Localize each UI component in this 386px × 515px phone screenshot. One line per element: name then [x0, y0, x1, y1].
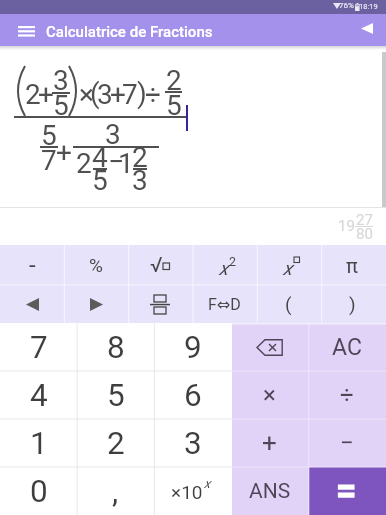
staticText: 7 — [122, 78, 138, 111]
staticText: x — [204, 476, 211, 491]
staticText: 18:19 — [359, 2, 378, 11]
staticText: 27 — [356, 211, 373, 229]
staticText: × — [263, 381, 276, 409]
button[interactable]: x — [256, 245, 320, 285]
button[interactable]: ANS — [231, 467, 308, 515]
staticText: 4 — [30, 377, 48, 414]
staticText: ) — [137, 77, 147, 110]
staticText: 5 — [53, 89, 69, 122]
button[interactable]: × — [231, 371, 308, 419]
staticText: + — [110, 78, 126, 111]
staticText: 76% — [339, 1, 354, 10]
staticText: √ — [150, 253, 163, 278]
button[interactable]: 8 — [77, 323, 154, 371]
button[interactable]: ( — [256, 285, 320, 323]
button[interactable]: F⇔D — [192, 285, 256, 323]
staticText: ( — [90, 77, 100, 110]
staticText: F⇔D — [208, 295, 241, 314]
staticText: − — [108, 145, 125, 178]
staticText: 2 — [76, 147, 92, 180]
button[interactable] — [350, 15, 384, 41]
button[interactable]: 5 — [77, 371, 154, 419]
button[interactable]: π — [320, 245, 384, 285]
staticText: 5 — [41, 119, 57, 152]
staticText: ( — [285, 293, 292, 315]
staticText: − — [340, 429, 354, 457]
button[interactable]: 1 — [0, 419, 77, 467]
staticText: 2 — [132, 141, 148, 174]
staticText: + — [56, 136, 72, 169]
button[interactable]: 7 — [0, 323, 77, 371]
staticText: 19 — [338, 217, 355, 235]
staticText: 80 — [356, 225, 373, 243]
button[interactable]: 0 — [0, 467, 77, 515]
staticText: + — [38, 78, 54, 111]
staticText: 2 — [229, 254, 237, 269]
staticText: 9 — [184, 329, 202, 366]
button[interactable]: , — [77, 467, 154, 515]
staticText: , — [112, 473, 119, 510]
staticText: ÷ — [340, 381, 354, 409]
button[interactable]: AC — [308, 323, 385, 371]
staticText: 4 — [92, 141, 108, 174]
staticText: 8 — [107, 329, 125, 366]
staticText: ÷ — [145, 78, 161, 111]
button[interactable]: 4 — [0, 371, 77, 419]
button[interactable] — [64, 285, 128, 323]
staticText: 1 — [118, 147, 134, 180]
button[interactable] — [128, 285, 192, 323]
staticText: = — [336, 470, 357, 512]
button[interactable] — [0, 285, 64, 323]
staticText: ×10 — [171, 481, 203, 503]
staticText: 7 — [30, 329, 48, 366]
button[interactable]: 3 — [154, 419, 231, 467]
button[interactable] — [10, 20, 42, 42]
staticText: π — [346, 254, 358, 277]
button[interactable]: ×10 — [154, 467, 231, 515]
staticText: 3 — [184, 425, 202, 462]
button[interactable]: + — [231, 419, 308, 467]
staticText: 1 — [30, 425, 48, 462]
staticText: 6 — [184, 377, 202, 414]
button[interactable]: √ — [128, 245, 192, 285]
button[interactable]: x — [192, 245, 256, 285]
staticText: 5 — [107, 377, 125, 414]
staticText: AC — [332, 334, 362, 361]
staticText: 7 — [41, 144, 57, 177]
staticText: 3 — [105, 118, 121, 151]
button[interactable]: 2 — [77, 419, 154, 467]
staticText: % — [89, 254, 103, 276]
staticText: x — [219, 257, 229, 279]
staticText: 2 — [107, 425, 125, 462]
staticText: 3 — [97, 78, 113, 111]
staticText: ) — [349, 293, 356, 315]
button[interactable]: 9 — [154, 323, 231, 371]
staticText: 5 — [92, 164, 108, 197]
staticText: ANS — [249, 479, 291, 504]
button[interactable]: ) — [320, 285, 384, 323]
button[interactable]: 6 — [154, 371, 231, 419]
button[interactable] — [231, 323, 308, 371]
staticText: 3 — [132, 164, 148, 197]
staticText: × — [79, 78, 94, 111]
staticText: 3 — [53, 64, 69, 97]
button[interactable]: ÷ — [308, 371, 385, 419]
staticText: 0 — [30, 473, 48, 510]
staticText: - — [29, 251, 36, 279]
staticText: + — [262, 428, 277, 458]
button[interactable]: = — [308, 467, 385, 515]
staticText: x — [283, 257, 293, 279]
button[interactable]: - — [0, 245, 64, 285]
staticText: 5 — [166, 89, 182, 122]
staticText: Calculatrice de Fractions — [46, 23, 213, 41]
staticText: 2 — [25, 78, 41, 111]
button[interactable]: % — [64, 245, 128, 285]
button[interactable]: − — [308, 419, 385, 467]
staticText: 2 — [166, 64, 182, 97]
